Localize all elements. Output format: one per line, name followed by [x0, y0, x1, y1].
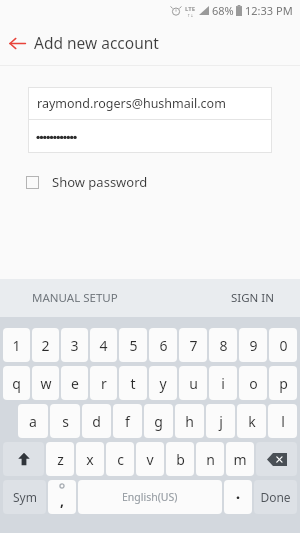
button[interactable]: n — [196, 442, 224, 476]
staticText: n — [206, 450, 215, 469]
button[interactable]: 4 — [90, 328, 117, 362]
staticText: v — [146, 450, 154, 469]
staticText: r — [101, 374, 107, 393]
staticText: 3 — [70, 336, 79, 355]
button[interactable]: a — [18, 404, 48, 438]
button[interactable]: 6 — [149, 328, 177, 362]
staticText: 9 — [249, 336, 258, 355]
staticText: q — [12, 374, 21, 393]
button[interactable]: p — [269, 366, 297, 400]
button[interactable]: o — [239, 366, 267, 400]
button[interactable]: 2 — [32, 328, 59, 362]
staticText: o — [249, 374, 258, 393]
button[interactable]: Back — [0, 26, 34, 60]
staticText: 7 — [189, 336, 198, 355]
staticText: a — [29, 412, 37, 431]
staticText: 2 — [41, 336, 50, 355]
button[interactable]: 0 — [269, 328, 297, 362]
button[interactable]: b — [166, 442, 194, 476]
button[interactable]: 9 — [239, 328, 267, 362]
button[interactable]: x — [76, 442, 104, 476]
staticText: MANUAL SETUP — [32, 290, 118, 306]
staticText: l — [281, 412, 285, 431]
staticText: 8 — [219, 336, 228, 355]
staticText: 1 — [12, 336, 21, 355]
button[interactable]: Show password — [26, 168, 148, 196]
staticText: 6 — [159, 336, 168, 355]
staticText: s — [62, 412, 69, 431]
button[interactable]: f — [113, 404, 142, 438]
staticText: English(US) — [122, 490, 178, 504]
staticText: i — [221, 374, 225, 393]
staticText: c — [117, 450, 124, 469]
button[interactable]: d — [82, 404, 111, 438]
staticText: g — [154, 412, 163, 431]
staticText: 12:33 PM — [245, 3, 293, 18]
staticText: m — [233, 450, 247, 469]
button[interactable]: c — [106, 442, 134, 476]
button[interactable]: y — [149, 366, 177, 400]
staticText: k — [248, 412, 256, 431]
button[interactable]: Period — [224, 480, 252, 514]
staticText: w — [40, 374, 52, 393]
staticText: b — [176, 450, 185, 469]
button[interactable]: MANUAL SETUP — [18, 283, 132, 313]
staticText: h — [185, 412, 194, 431]
button[interactable]: j — [206, 404, 235, 438]
staticText: Done — [260, 489, 291, 505]
staticText: x — [86, 450, 94, 469]
button[interactable]: k — [237, 404, 266, 438]
button[interactable]: q — [3, 366, 30, 400]
staticText: z — [57, 450, 64, 469]
staticText: 0 — [279, 336, 288, 355]
button[interactable]: SIGN IN — [217, 283, 288, 313]
staticText: SIGN IN — [231, 290, 274, 306]
button[interactable]: 1 — [3, 328, 30, 362]
staticText: t — [130, 374, 136, 393]
button[interactable]: l — [268, 404, 297, 438]
button[interactable]: Sym — [3, 480, 46, 514]
button[interactable]: , — [48, 480, 76, 514]
staticText: d — [92, 412, 101, 431]
staticText: LTE — [185, 5, 196, 13]
staticText: f — [125, 412, 130, 431]
staticText: raymond.rogers@hushmail.com — [37, 95, 226, 112]
button[interactable] — [28, 120, 272, 153]
staticText: Show password — [52, 173, 148, 191]
button[interactable]: Backspace — [256, 442, 297, 476]
button[interactable]: i — [209, 366, 237, 400]
staticText: ↑↓ — [187, 13, 194, 17]
button[interactable]: 7 — [179, 328, 207, 362]
button[interactable]: v — [136, 442, 164, 476]
button[interactable]: raymond.rogers@hushmail.com — [28, 87, 272, 119]
button[interactable]: Space — [78, 480, 222, 514]
button[interactable]: s — [50, 404, 80, 438]
button[interactable]: 5 — [119, 328, 147, 362]
staticText: , — [60, 491, 64, 510]
button[interactable]: u — [179, 366, 207, 400]
button[interactable]: w — [32, 366, 59, 400]
button[interactable]: r — [90, 366, 117, 400]
staticText: Add new account — [34, 32, 159, 53]
staticText: e — [71, 374, 79, 393]
staticText: p — [279, 374, 288, 393]
button[interactable]: m — [226, 442, 254, 476]
button[interactable]: t — [119, 366, 147, 400]
staticText: y — [159, 374, 167, 393]
button[interactable]: g — [144, 404, 173, 438]
button[interactable]: Shift — [3, 442, 44, 476]
staticText: u — [189, 374, 198, 393]
staticText: 68% — [212, 3, 234, 18]
staticText: Sym — [13, 489, 37, 505]
button[interactable]: 8 — [209, 328, 237, 362]
staticText: 4 — [99, 336, 108, 355]
button[interactable]: h — [175, 404, 204, 438]
button[interactable]: 3 — [61, 328, 88, 362]
staticText: 5 — [129, 336, 138, 355]
staticText: j — [219, 412, 223, 431]
button[interactable]: Done — [254, 480, 297, 514]
button[interactable]: e — [61, 366, 88, 400]
button[interactable]: z — [46, 442, 74, 476]
